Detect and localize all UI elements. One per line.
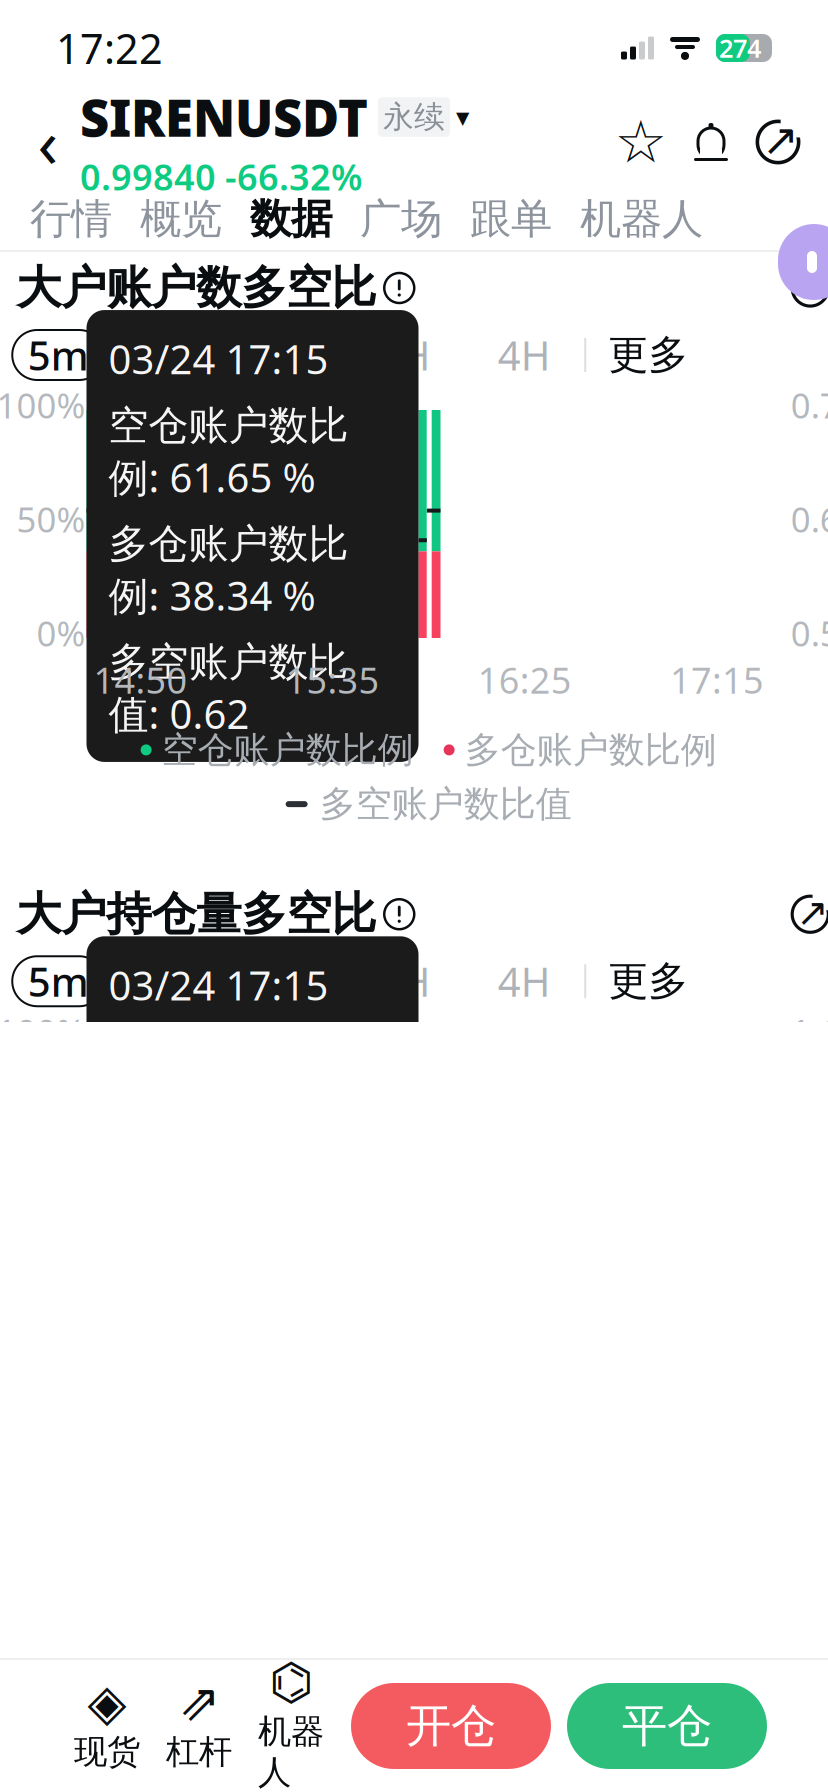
staticText: 空仓账户数比例 xyxy=(162,728,414,772)
button[interactable]: 4H xyxy=(464,330,584,380)
staticText: 16:25 xyxy=(478,656,572,704)
staticText: 多仓账户数比例: 38.34 % xyxy=(108,519,348,622)
button[interactable]: 永续 xyxy=(378,97,469,137)
staticText: 1.11 xyxy=(791,1008,828,1054)
staticText: 15m xyxy=(123,955,206,1008)
staticText: 多空账户数比值 xyxy=(320,782,572,826)
staticText: 广场 xyxy=(360,194,442,244)
staticText: ▾ xyxy=(456,102,469,132)
staticText: 17:22 xyxy=(56,21,163,75)
button[interactable]: 分享 xyxy=(789,893,828,935)
staticText: 4H xyxy=(498,328,551,381)
button[interactable]: 15m xyxy=(104,956,224,1006)
staticText: 大户持仓量多空比 xyxy=(16,886,376,942)
button[interactable]: Back xyxy=(26,112,70,172)
staticText: 5m xyxy=(28,328,89,381)
staticText: 1H xyxy=(378,955,431,1008)
staticText: SIRENUSDT xyxy=(80,83,368,151)
staticText: 15m xyxy=(123,328,206,381)
staticText: 0.63 xyxy=(791,496,828,542)
staticText: 0.99840 -66.32% xyxy=(80,153,363,200)
staticText: 03/24 17:15 xyxy=(108,332,328,385)
staticText: 平仓 xyxy=(622,1698,712,1754)
staticText: 50% xyxy=(16,496,85,542)
staticText: 跟单 xyxy=(470,194,552,244)
button[interactable]: 概览 xyxy=(126,188,236,250)
button[interactable]: 广场 xyxy=(346,188,456,250)
button[interactable]: ◈ xyxy=(61,1679,153,1772)
staticText: 大户账户数多空比 xyxy=(16,260,376,316)
button[interactable]: 收藏 xyxy=(614,115,668,169)
staticText: 5m xyxy=(28,955,89,1008)
button[interactable]: 5m xyxy=(12,330,104,380)
staticText: 多仓账户数比例 xyxy=(465,728,717,772)
staticText: 100% xyxy=(0,382,85,428)
staticText: 274 xyxy=(719,31,761,65)
staticText: ↗ xyxy=(762,115,799,165)
staticText: 0.72 xyxy=(791,382,828,428)
button[interactable]: 平仓 xyxy=(567,1683,767,1769)
staticText: 4H xyxy=(498,955,551,1008)
staticText: 行情 xyxy=(30,194,112,244)
button[interactable]: 1H xyxy=(344,956,464,1006)
staticText: 多空账户数比值: 0.62 xyxy=(108,638,348,740)
button[interactable]: 1H xyxy=(344,330,464,380)
button[interactable]: 行情 xyxy=(16,188,126,250)
button[interactable]: 机器人 xyxy=(566,188,717,250)
button[interactable]: 5m xyxy=(12,956,104,1006)
staticText: ‹ xyxy=(37,98,58,186)
button[interactable]: 跟单 xyxy=(456,188,566,250)
staticText: 开仓 xyxy=(406,1698,496,1754)
staticText: ↗ xyxy=(796,264,828,308)
button[interactable]: 15m xyxy=(104,330,224,380)
button[interactable]: ⇗ xyxy=(153,1679,245,1772)
staticText: ↗ xyxy=(796,891,828,934)
button[interactable]: 分享 xyxy=(789,267,828,309)
staticText: 机器人 xyxy=(258,1711,324,1792)
staticText: ⇗ xyxy=(178,1674,220,1731)
button[interactable]: 30m xyxy=(224,956,344,1006)
button[interactable]: 4H xyxy=(464,956,584,1006)
staticText: 15:35 xyxy=(285,656,379,704)
button[interactable]: ⌬ xyxy=(245,1659,337,1792)
staticText: 更多 xyxy=(608,330,688,379)
staticText: 30m xyxy=(243,955,326,1008)
staticText: 杠杆 xyxy=(166,1731,232,1772)
staticText: 14:50 xyxy=(93,656,187,704)
button[interactable]: 分享 xyxy=(738,118,802,166)
staticText: ◈ xyxy=(87,1674,126,1731)
staticText: ⌬ xyxy=(269,1653,313,1711)
button[interactable]: 提醒 xyxy=(668,115,738,169)
staticText: 03/24 17:15 xyxy=(108,958,328,1011)
button[interactable]: 30m xyxy=(224,330,344,380)
staticText: 17:15 xyxy=(670,656,764,704)
button[interactable]: 数据 xyxy=(236,188,346,250)
staticText: 机器人 xyxy=(580,194,703,244)
staticText: 更多 xyxy=(608,957,688,1006)
staticText: ☆ xyxy=(614,109,667,175)
staticText: 现货 xyxy=(74,1731,140,1772)
button[interactable]: 更多 xyxy=(586,330,688,379)
staticText: 空仓账户数比例: 61.65 % xyxy=(108,401,348,503)
staticText: 0.54 xyxy=(791,610,828,656)
button[interactable]: 更多 xyxy=(586,957,688,1006)
staticText: 100% xyxy=(0,1008,85,1054)
button[interactable]: 开仓 xyxy=(351,1683,551,1769)
